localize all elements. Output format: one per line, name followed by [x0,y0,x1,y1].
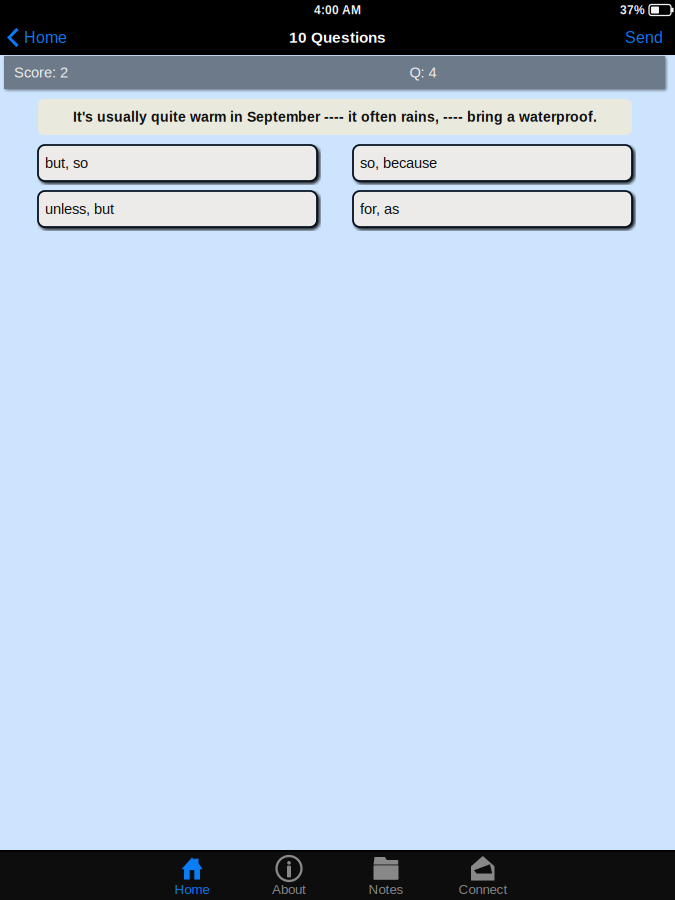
staticText: Notes [368,882,403,897]
button[interactable]: for, as [353,191,632,227]
button[interactable]: Notes [337,851,434,900]
staticText: for, as [360,201,399,217]
staticText: Connect [458,882,507,897]
staticText: About [272,882,306,897]
staticText: but, so [45,155,88,171]
button[interactable]: Connect [434,851,531,900]
staticText: Home [174,882,209,897]
staticText: Send [625,29,663,46]
staticText: Q: 4 [409,64,436,81]
staticText: unless, but [45,201,114,217]
button[interactable]: About [240,851,337,900]
button[interactable]: unless, but [38,191,317,227]
button[interactable]: Home [143,851,240,900]
button[interactable]: Send [613,20,675,55]
button[interactable]: Home [0,20,77,55]
staticText: 37% [620,3,645,17]
staticText: It's usually quite warm in September ---… [73,109,597,125]
button[interactable]: so, because [353,145,632,181]
button[interactable]: but, so [38,145,317,181]
staticText: Home [24,29,67,46]
staticText: 4:00 AM [314,3,361,17]
staticText: Score: 2 [14,64,68,81]
staticText: so, because [360,155,437,171]
staticText: 10 Questions [289,29,386,46]
